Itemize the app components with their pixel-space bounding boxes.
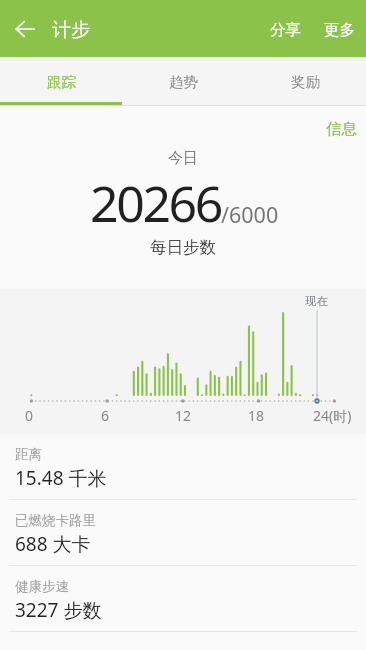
staticText: 计步	[52, 18, 90, 42]
staticText: 更多	[324, 20, 355, 40]
staticText: 24(时)	[313, 406, 352, 425]
button[interactable]: 信息	[310, 108, 366, 144]
button[interactable]: Back	[0, 0, 52, 57]
staticText: 15.48 千米	[15, 465, 107, 491]
staticText: 信息	[326, 119, 357, 139]
staticText: 18	[248, 406, 265, 425]
button[interactable]: 分享	[261, 11, 313, 47]
staticText: 现在	[305, 294, 328, 308]
staticText: 已燃烧卡路里	[15, 512, 96, 529]
staticText: 6	[101, 406, 110, 425]
staticText: 12	[175, 406, 192, 425]
staticText: 688 大卡	[15, 531, 91, 557]
button[interactable]: 跟踪	[0, 57, 122, 106]
staticText: 0	[25, 406, 34, 425]
staticText: 跟踪	[47, 73, 76, 91]
button[interactable]: 趋势	[122, 57, 244, 106]
button[interactable]: 距离	[0, 434, 366, 500]
staticText: 距离	[15, 446, 42, 463]
staticText: 每日步数	[0, 237, 366, 258]
staticText: 奖励	[291, 73, 320, 91]
staticText: 3227 步数	[15, 597, 102, 623]
staticText: 分享	[270, 20, 301, 40]
staticText: 今日	[0, 149, 366, 168]
button[interactable]: 已燃烧卡路里	[0, 500, 366, 566]
button[interactable]: 奖励	[244, 57, 366, 106]
staticText: /6000	[221, 200, 279, 229]
button[interactable]: 健康步速	[0, 566, 366, 632]
staticText: 20266	[90, 169, 221, 237]
staticText: 健康步速	[15, 578, 69, 595]
staticText: 趋势	[169, 73, 198, 91]
button[interactable]: 更多	[313, 11, 366, 47]
